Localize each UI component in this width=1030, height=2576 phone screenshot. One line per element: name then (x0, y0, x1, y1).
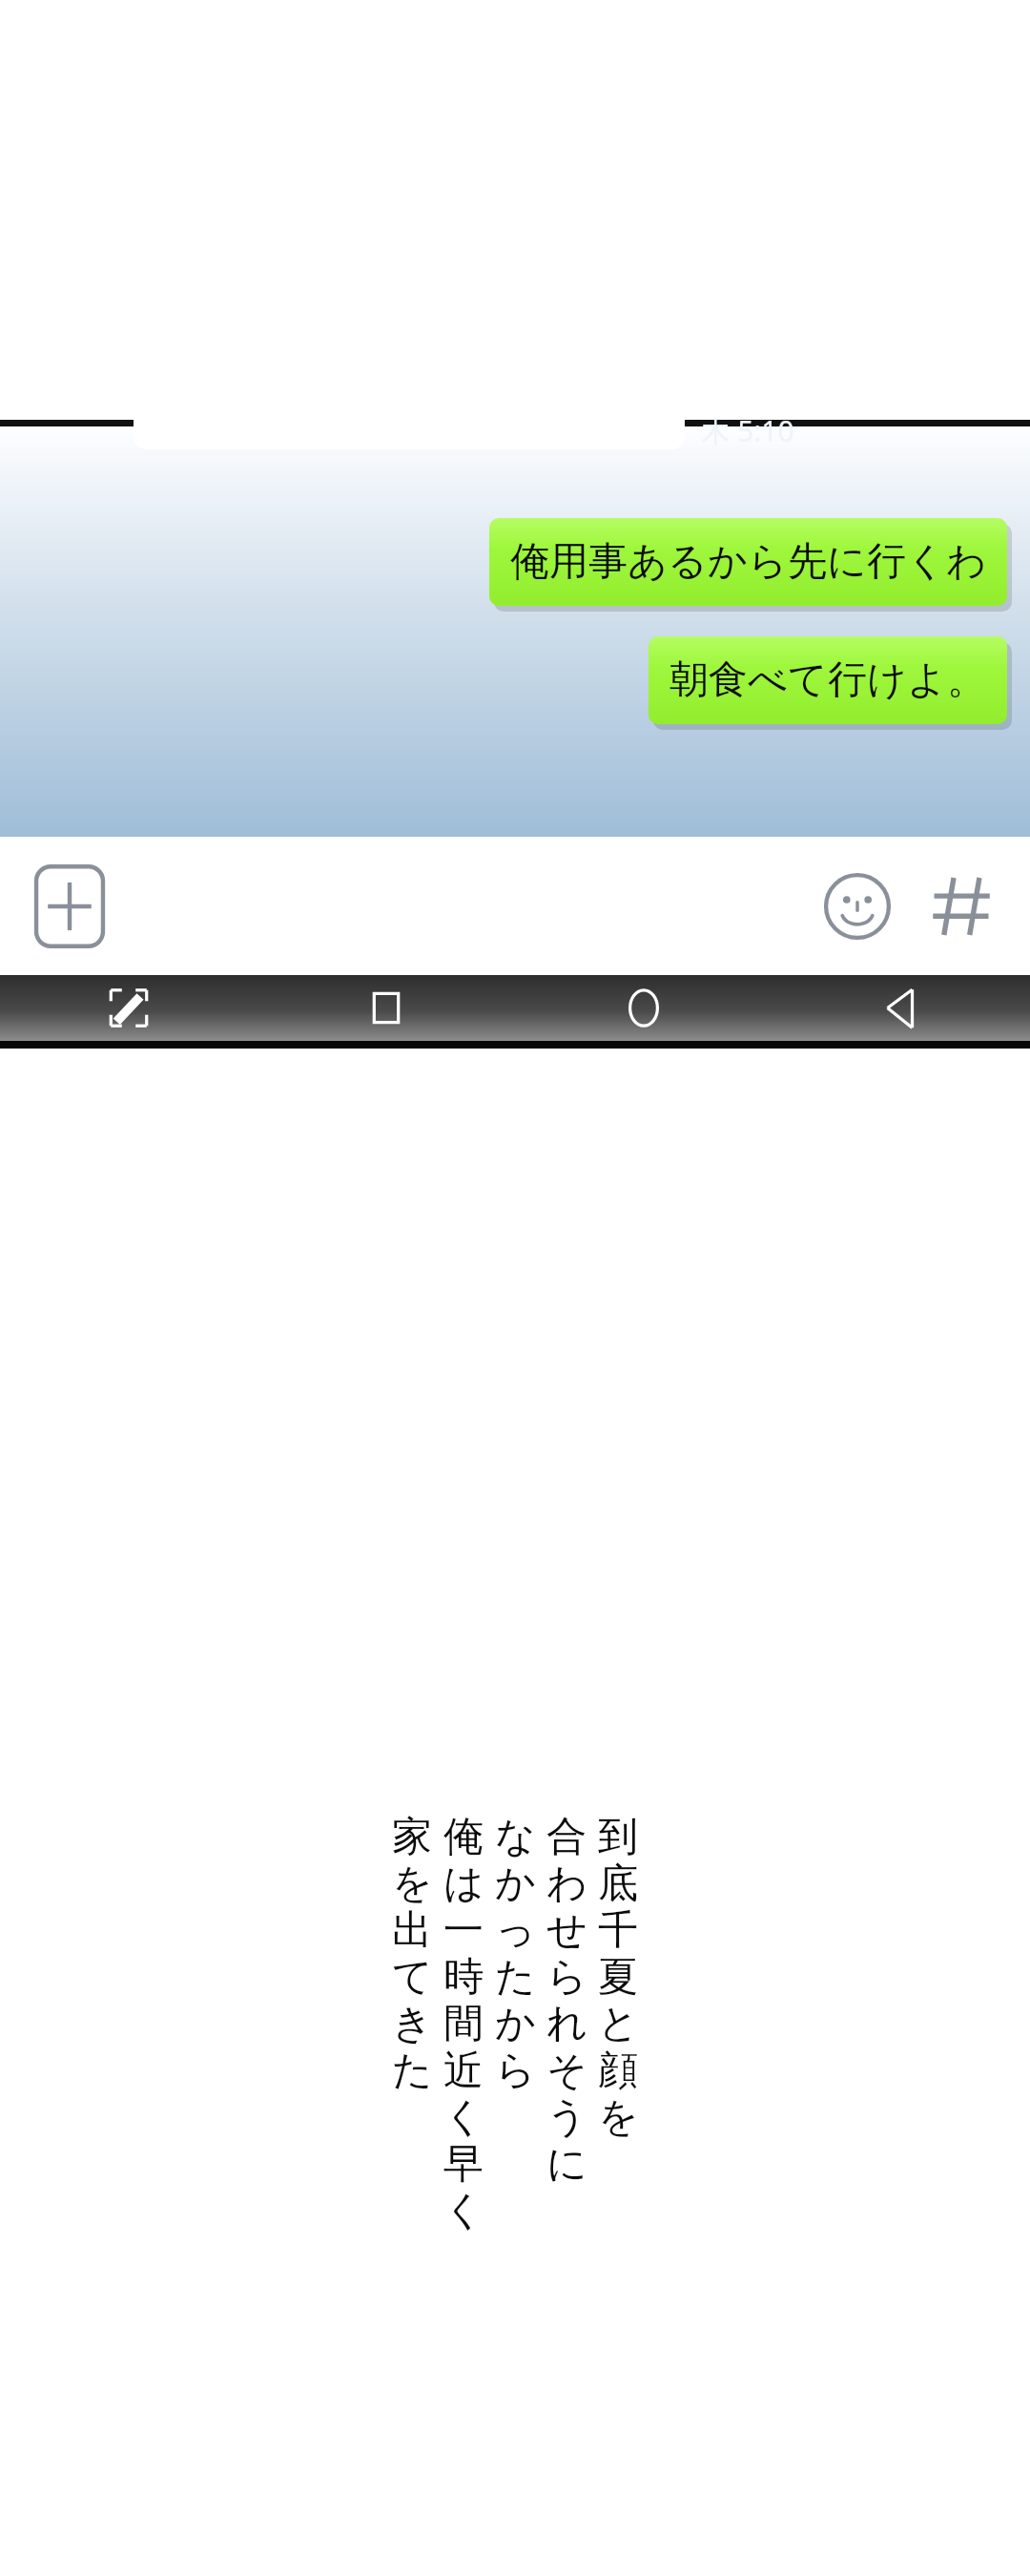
button[interactable]: Hashtag (910, 854, 1015, 959)
button[interactable]: Add attachment (19, 856, 120, 957)
button[interactable]: Home (515, 975, 772, 1041)
staticText: と (598, 1999, 639, 2046)
staticText: 俺用事あるから先に行くわ (510, 537, 986, 587)
staticText: わ (546, 1859, 587, 1905)
staticText: ら (546, 1952, 587, 1999)
staticText: 出 (392, 1905, 432, 1952)
staticText: 家 (392, 1812, 432, 1859)
staticText: れ (546, 1999, 587, 2046)
staticText: 朝食べて行けよ。 (674, 661, 991, 711)
staticText: に (546, 2139, 587, 2186)
staticText: せ (546, 1905, 587, 1952)
staticText: ら (495, 2046, 536, 2092)
staticText: き (392, 1999, 433, 2046)
staticText: 夏 (598, 1952, 638, 1999)
button[interactable]: Screenshot (0, 975, 257, 1041)
button[interactable]: Stickers (805, 854, 910, 959)
staticText: 一 (443, 1905, 484, 1952)
button[interactable]: Recent apps (257, 975, 515, 1041)
staticText: 底 (598, 1859, 638, 1905)
staticText: っ (495, 1905, 536, 1952)
staticText: を (598, 2092, 639, 2139)
staticText: た (392, 2046, 433, 2092)
staticText: く (443, 2186, 484, 2233)
button[interactable]: 朝食べて行けよ。 (649, 636, 1007, 724)
staticText: 時 (443, 1952, 484, 1999)
staticText: た (495, 1952, 536, 1999)
staticText: そ (546, 2046, 587, 2092)
button[interactable]: 俺用事あるから先に行くわ (489, 518, 1007, 606)
staticText: 間 (443, 1999, 484, 2046)
button[interactable]: Back (772, 975, 1030, 1041)
staticText: 俺用事あるから先に行くわ (515, 543, 991, 592)
staticText: を (392, 1859, 433, 1905)
staticText: 合 (546, 1812, 587, 1859)
staticText: な (495, 1812, 536, 1859)
staticText: は (443, 1859, 484, 1905)
staticText: 俺 (443, 1812, 484, 1859)
staticText: て (392, 1952, 433, 1999)
staticText: 早 (443, 2139, 484, 2186)
staticText: 近 (443, 2046, 484, 2092)
staticText: 朝食べて行けよ。 (669, 655, 986, 705)
staticText: 千 (598, 1905, 638, 1952)
staticText: く (443, 2092, 484, 2139)
staticText: 到 (598, 1812, 638, 1859)
staticText: 木 5:10 (701, 411, 794, 450)
staticText: 顔 (598, 2046, 638, 2092)
staticText: か (495, 1859, 536, 1905)
staticText: か (495, 1999, 536, 2046)
staticText: う (546, 2092, 587, 2139)
